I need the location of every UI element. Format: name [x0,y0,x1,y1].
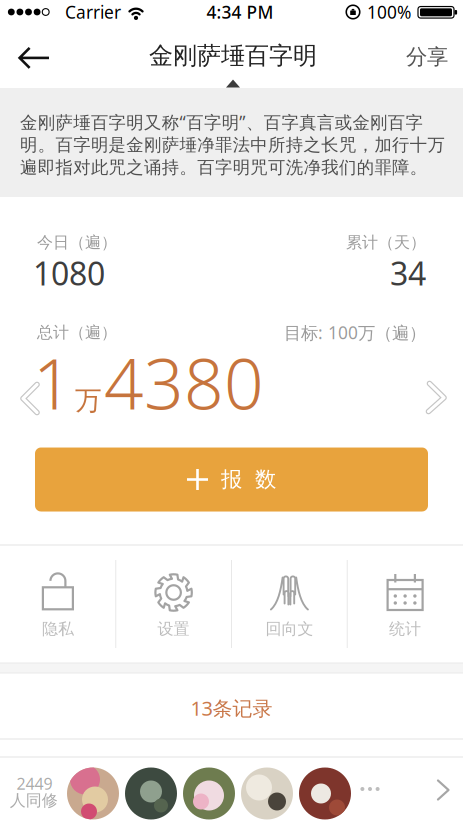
button[interactable]: 隐私 [2,548,114,660]
button[interactable]: More practitioners [428,771,458,809]
staticText: 1 [33,336,73,429]
staticText: 累计（天） [346,233,426,252]
button[interactable]: Back [10,37,59,78]
button[interactable]: Previous [12,373,46,423]
staticText: 4380 [104,336,264,429]
staticText: 100% [367,0,411,23]
button[interactable]: Practitioner 3 [183,767,235,819]
button[interactable]: 设置 [118,548,230,660]
staticText: 2449 [16,773,52,794]
button[interactable]: 报 [35,447,428,511]
staticText: 统计 [389,619,421,639]
staticText: 明。百字明是金刚萨埵净罪法中所持之长咒，加行十万 [20,134,445,156]
staticText: 1080 [33,252,105,294]
staticText: 隐私 [42,619,74,639]
button[interactable]: 统计 [349,548,461,660]
button[interactable]: Practitioner 4 [241,767,293,819]
staticText: 总计（遍） [37,323,117,342]
staticText: 万 [75,384,102,417]
staticText: 遍即指对此咒之诵持。百字明咒可洗净我们的罪障。 [20,157,427,178]
staticText: 报 [221,466,242,493]
staticText: Carrier [65,0,121,23]
staticText: 数 [255,466,276,493]
staticText: 设置 [158,619,190,639]
button[interactable]: Next [419,372,453,422]
button[interactable]: 分享 [396,34,458,80]
staticText: 4:34 PM [206,0,273,23]
staticText: 目标: 100万（遍） [284,321,426,344]
staticText: 今日（遍） [37,233,117,252]
staticText: 分享 [406,44,448,70]
staticText: 人同修 [10,791,58,810]
staticText: 13条记录 [190,695,272,721]
staticText: 金刚萨埵百字明 [149,41,317,71]
button[interactable]: Practitioner 5 [299,767,351,819]
button[interactable]: 13条记录 [0,675,463,740]
button[interactable]: 金刚萨埵百字明 [149,41,317,88]
button[interactable]: Practitioner 2 [125,767,177,819]
staticText: 金刚萨埵百字明又称“百字明”、百字真言或金刚百字 [20,110,423,133]
staticText: 回向文 [265,619,313,639]
button[interactable]: Practitioner 1 [67,767,119,819]
staticText: 34 [390,252,426,294]
button[interactable]: 回向文 [233,548,345,660]
